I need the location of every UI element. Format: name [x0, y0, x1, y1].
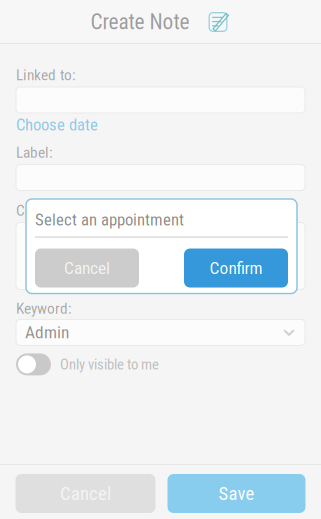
staticText: Confirm: [209, 258, 262, 278]
staticText: Linked to:: [16, 66, 76, 84]
button[interactable]: Save: [167, 474, 305, 513]
staticText: Cancel: [64, 258, 110, 278]
button[interactable]: Choose date: [16, 113, 98, 134]
staticText: Only visible to me: [60, 356, 159, 373]
button[interactable]: Confirm: [184, 248, 288, 287]
button[interactable]: Cancel: [35, 248, 139, 287]
staticText: Create Note: [90, 9, 189, 34]
button[interactable]: Admin: [16, 319, 305, 345]
staticText: Save: [218, 483, 254, 504]
staticText: Keyword:: [16, 299, 72, 317]
staticText: Label:: [16, 143, 53, 161]
staticText: Select an appointment: [35, 210, 184, 229]
button[interactable]: Only visible to me: [16, 353, 159, 375]
staticText: Choose date: [16, 115, 98, 134]
staticText: Comment:: [16, 201, 80, 219]
staticText: Admin: [25, 322, 69, 342]
staticText: Cancel: [60, 483, 111, 504]
button[interactable]: Cancel: [15, 474, 155, 513]
